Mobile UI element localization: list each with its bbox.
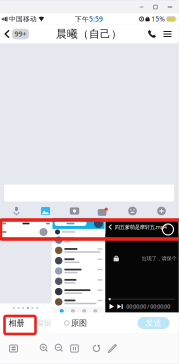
- button[interactable]: Voice message: [2, 203, 31, 219]
- staticText: 晨曦（自己）: [56, 27, 122, 40]
- staticText: 15%: [151, 15, 165, 23]
- button[interactable]: Minimize: [134, 0, 148, 13]
- button[interactable]: Stickers: [118, 203, 147, 219]
- staticText: 下午5:59: [75, 15, 103, 23]
- staticText: 发送: [145, 318, 161, 328]
- button[interactable]: 原图: [64, 318, 87, 328]
- staticText: 相册: [8, 318, 24, 328]
- staticText: 编辑: [35, 318, 51, 328]
- button[interactable]: Photos: [31, 203, 60, 219]
- button[interactable]: Rotate: [90, 334, 102, 362]
- button[interactable]: 99+: [0, 24, 29, 43]
- button[interactable]: Video call: [89, 203, 118, 219]
- button[interactable]: Zoom in: [38, 334, 50, 362]
- staticText: 00:00:00 / 00:00:00: [126, 303, 170, 310]
- button[interactable]: Close: [162, 0, 177, 13]
- button[interactable]: Annotate: [106, 334, 118, 362]
- staticText: 四五爹萌是摩轩五.mp4: [115, 223, 167, 231]
- button[interactable]: 相册: [8, 318, 24, 328]
- staticText: 原图: [71, 318, 87, 328]
- staticText: 出现了，请保个: [141, 255, 176, 262]
- button[interactable]: Camera: [60, 203, 89, 219]
- staticText: 中国移动: [9, 15, 37, 23]
- button[interactable]: 编辑: [35, 318, 51, 328]
- button[interactable]: Maximize: [148, 0, 162, 13]
- button[interactable]: Zoom out: [53, 334, 65, 362]
- button[interactable]: More options: [159, 24, 175, 43]
- button[interactable]: Actual size: [68, 334, 80, 362]
- button[interactable]: 发送: [137, 317, 169, 329]
- button[interactable]: Call: [144, 24, 159, 43]
- staticText: 99+: [14, 30, 26, 38]
- button[interactable]: More: [147, 203, 176, 219]
- button[interactable]: Save: [7, 334, 19, 362]
